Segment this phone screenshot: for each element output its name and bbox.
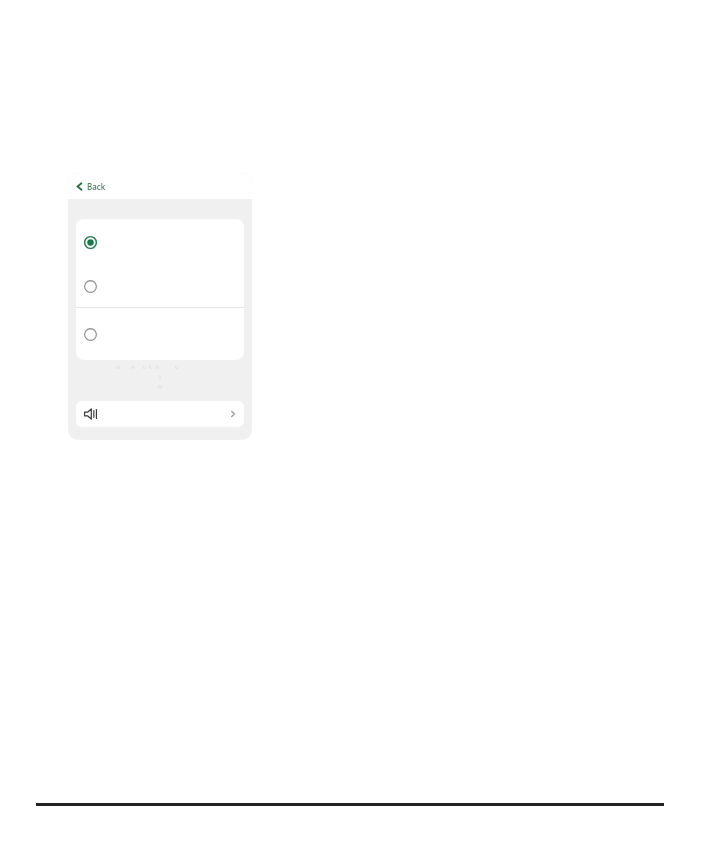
staticText: Back bbox=[87, 181, 106, 192]
other: Sound output bbox=[83, 407, 99, 421]
button[interactable]: Sound output bbox=[76, 401, 244, 427]
other: Option bbox=[84, 328, 97, 341]
button[interactable]: Option bbox=[76, 266, 244, 307]
other: Selected option bbox=[84, 236, 97, 249]
button[interactable]: Back bbox=[73, 179, 108, 194]
button[interactable]: Option bbox=[76, 308, 244, 360]
button[interactable]: Selected option bbox=[76, 219, 244, 266]
other: Option bbox=[84, 280, 97, 293]
